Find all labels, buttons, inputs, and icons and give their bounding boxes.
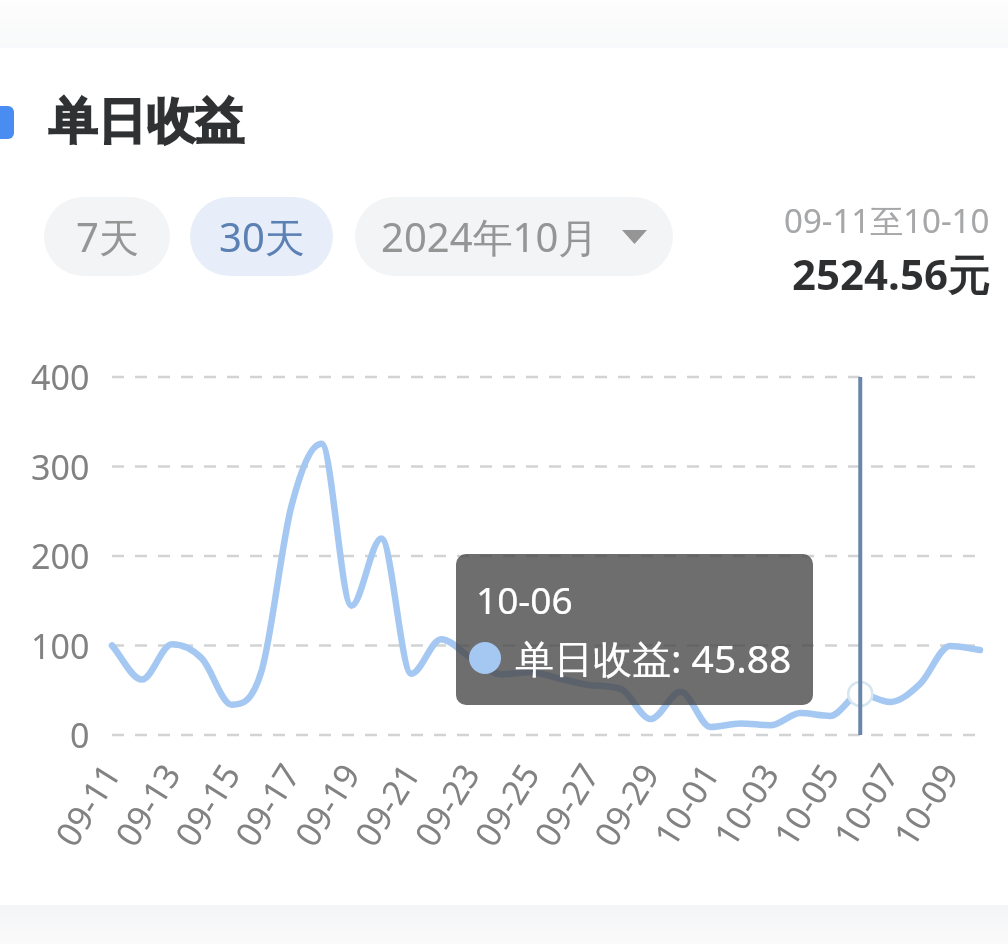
button[interactable]: 30天 — [190, 197, 333, 276]
staticText: 2524.56元 — [792, 245, 990, 302]
button[interactable]: 2024年10月 — [355, 197, 673, 276]
staticText: 单日收益 — [48, 91, 244, 153]
staticText: 30天 — [219, 209, 305, 264]
staticText: 09-11至10-10 — [784, 198, 990, 243]
staticText: 2024年10月 — [381, 209, 599, 264]
staticText: 7天 — [76, 209, 139, 264]
button[interactable]: 7天 — [44, 197, 170, 276]
